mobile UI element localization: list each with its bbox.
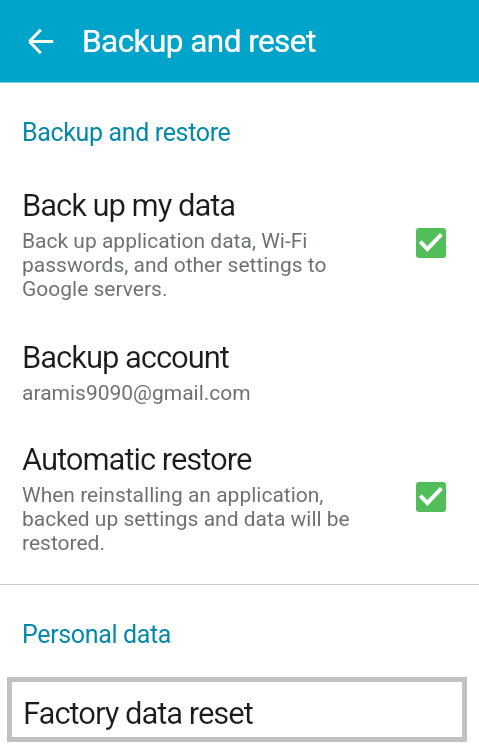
button[interactable]: Navigate up xyxy=(17,18,65,66)
staticText: When reinstalling an application, backed… xyxy=(22,483,375,555)
staticText: Backup and restore xyxy=(22,118,231,147)
staticText: aramis9090@gmail.com xyxy=(22,381,251,406)
button[interactable]: Automatic restore xyxy=(416,482,446,512)
button[interactable]: Automatic restore xyxy=(0,441,375,555)
staticText: Factory data reset xyxy=(23,695,253,731)
staticText: Backup account xyxy=(22,339,229,375)
button[interactable]: Factory data reset xyxy=(7,677,467,742)
staticText: Personal data xyxy=(22,620,172,649)
button[interactable]: Back up my data xyxy=(416,228,446,258)
staticText: Back up application data, Wi-Fi password… xyxy=(22,229,375,301)
staticText: Automatic restore xyxy=(22,441,252,477)
staticText: Back up my data xyxy=(22,187,236,223)
button[interactable]: Back up my data xyxy=(0,187,375,301)
button[interactable]: Backup account xyxy=(0,339,479,406)
staticText: Backup and reset xyxy=(82,23,316,60)
